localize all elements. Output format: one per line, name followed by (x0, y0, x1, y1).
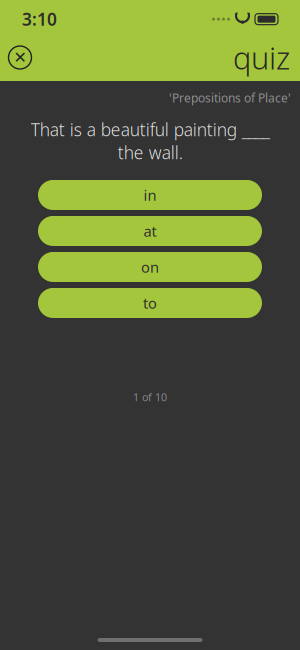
staticText: 'Prepositions of Place' (169, 90, 291, 106)
button[interactable]: Close (0, 40, 40, 74)
button[interactable]: to (38, 288, 262, 318)
button[interactable]: at (38, 216, 262, 246)
button[interactable]: on (38, 252, 262, 282)
staticText: on (141, 257, 159, 277)
staticText: 1 of 10 (133, 390, 167, 404)
staticText: in (143, 185, 156, 205)
staticText: to (143, 293, 157, 313)
button[interactable]: in (38, 180, 262, 210)
staticText: 3:10 (22, 8, 57, 31)
staticText: ✕ (13, 48, 26, 67)
staticText: quiz (233, 37, 290, 78)
staticText: That is a beautiful painting ____ the wa… (30, 118, 269, 164)
staticText: at (143, 221, 156, 241)
